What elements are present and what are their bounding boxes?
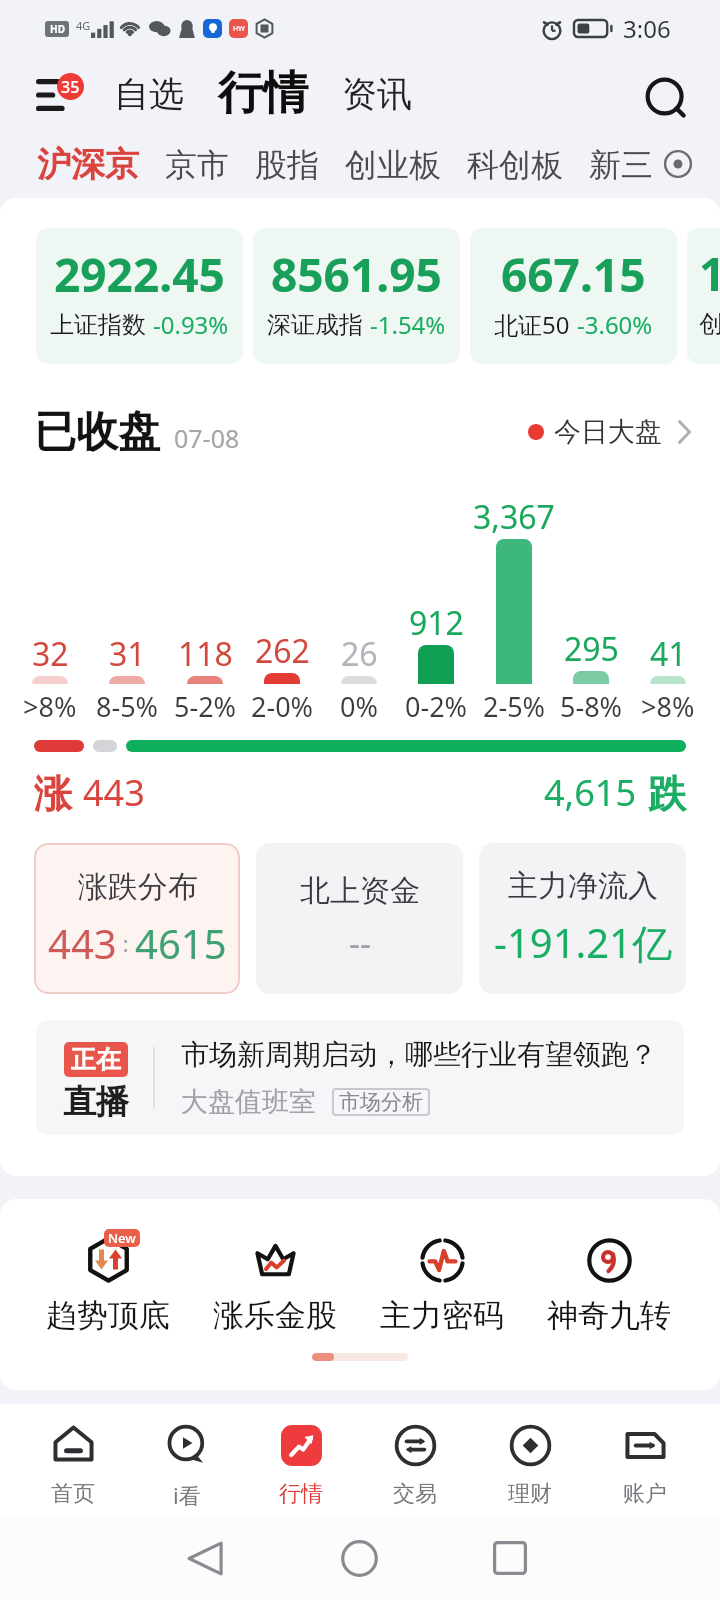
staticText: 主力净流入 <box>508 867 658 905</box>
staticText: 大盘值班室 <box>181 1085 316 1119</box>
staticText: 神奇九转 <box>547 1296 671 1335</box>
staticText: 京市 <box>165 145 229 185</box>
staticText: 8-5% <box>96 688 159 725</box>
staticText: 41 <box>650 632 687 676</box>
staticText: 股指 <box>255 145 319 185</box>
button[interactable]: 理财 <box>473 1425 587 1508</box>
staticText: 32 <box>32 632 69 676</box>
button[interactable]: 自选 <box>97 64 201 124</box>
button[interactable]: 北上资金 <box>256 843 463 994</box>
button[interactable]: 京市 <box>152 137 242 193</box>
button[interactable]: Recents <box>475 1523 545 1593</box>
staticText: 交易 <box>393 1480 437 1508</box>
staticText: 35 <box>61 76 80 98</box>
button[interactable]: 主力密码 <box>352 1235 532 1335</box>
staticText: 行情 <box>218 65 308 122</box>
staticText: 资讯 <box>342 72 412 116</box>
button[interactable]: 涨乐金股 <box>185 1235 365 1335</box>
button[interactable]: 8561.95 <box>253 228 460 364</box>
staticText: >8% <box>641 688 695 725</box>
staticText: 深证成指 <box>267 310 363 340</box>
staticText: 新三 <box>589 145 653 185</box>
button[interactable]: 资讯 <box>325 64 429 124</box>
staticText: 主力密码 <box>380 1296 504 1335</box>
staticText: -3.60% <box>577 308 653 341</box>
staticText: 创业板 <box>345 145 441 185</box>
staticText: 4G <box>76 18 91 33</box>
staticText: 沪深京 <box>37 143 139 186</box>
button[interactable]: 涨跌分布 <box>34 843 240 994</box>
staticText: 北上资金 <box>300 872 420 910</box>
button[interactable]: Search <box>640 64 698 122</box>
staticText: 118 <box>178 632 233 676</box>
staticText: 443 <box>48 916 117 970</box>
staticText: HD <box>50 22 65 36</box>
button[interactable]: 1358.18 <box>687 228 720 364</box>
staticText: 市场新周期启动，哪些行业有望领跑？ <box>181 1037 657 1072</box>
button[interactable]: New <box>18 1235 198 1335</box>
staticText: 直播 <box>63 1081 129 1123</box>
staticText: 涨乐金股 <box>213 1296 337 1335</box>
staticText: 涨 <box>34 770 72 818</box>
staticText: 行情 <box>279 1480 323 1508</box>
staticText: >8% <box>23 688 77 725</box>
staticText: 5-2% <box>174 688 237 725</box>
button[interactable]: Menu <box>28 67 88 119</box>
staticText: 已收盘 <box>34 406 160 459</box>
button[interactable]: 667.15 <box>470 228 677 364</box>
button[interactable]: Back <box>170 1523 240 1593</box>
button[interactable]: 股指 <box>242 137 332 193</box>
button[interactable]: Home <box>324 1523 394 1593</box>
staticText: -- <box>349 920 371 966</box>
staticText: 0-2% <box>405 688 468 725</box>
button[interactable]: 2922.45 <box>36 228 243 364</box>
staticText: 262 <box>255 629 310 673</box>
button[interactable]: 正在 <box>36 1020 684 1135</box>
staticText: 市场分析 <box>339 1089 423 1115</box>
staticText: 首页 <box>51 1480 95 1508</box>
staticText: 31 <box>109 632 146 676</box>
button[interactable]: 首页 <box>16 1425 130 1508</box>
button[interactable]: 科创板 <box>454 137 576 193</box>
button[interactable]: i看 <box>130 1425 244 1510</box>
staticText: 上证指数 <box>50 310 146 340</box>
staticText: 443 <box>83 768 145 817</box>
staticText: 8561.95 <box>271 243 442 306</box>
button[interactable]: 行情 <box>201 57 325 130</box>
staticText: 账户 <box>623 1480 667 1508</box>
staticText: 科创板 <box>467 145 563 185</box>
button[interactable]: 行情 <box>244 1425 358 1508</box>
staticText: : <box>117 928 135 958</box>
staticText: 趋势顶底 <box>46 1296 170 1335</box>
staticText: i看 <box>173 1480 201 1510</box>
button[interactable]: 神奇九转 <box>519 1235 699 1335</box>
staticText: HW <box>233 24 245 34</box>
button[interactable]: 创业板 <box>332 137 454 193</box>
button[interactable]: 新三 <box>576 137 666 193</box>
staticText: 自选 <box>114 72 184 116</box>
staticText: 理财 <box>508 1480 552 1508</box>
staticText: 5-8% <box>560 688 623 725</box>
staticText: 26 <box>341 632 378 676</box>
button[interactable]: 主力净流入 <box>479 843 686 994</box>
staticText: 0% <box>340 688 378 725</box>
staticText: 2-5% <box>483 688 546 725</box>
staticText: 3,367 <box>473 495 555 539</box>
button[interactable]: Filter <box>656 142 700 186</box>
button[interactable]: 沪深京 <box>24 135 152 194</box>
button[interactable]: 交易 <box>358 1425 472 1508</box>
staticText: 跌 <box>648 770 686 818</box>
staticText: New <box>108 1229 136 1247</box>
staticText: 2922.45 <box>54 243 225 306</box>
staticText: 创业板 <box>699 309 720 339</box>
staticText: -0.93% <box>153 308 229 341</box>
button[interactable]: 今日大盘 <box>522 409 697 455</box>
staticText: 正在 <box>71 1044 121 1075</box>
button[interactable]: 账户 <box>588 1425 702 1508</box>
staticText: -191.21亿 <box>494 915 672 970</box>
staticText: 1358.18 <box>699 242 720 305</box>
staticText: 涨跌分布 <box>78 868 198 906</box>
staticText: 07-08 <box>174 421 240 455</box>
staticText: 3:06 <box>623 12 671 45</box>
staticText: 912 <box>409 601 464 645</box>
